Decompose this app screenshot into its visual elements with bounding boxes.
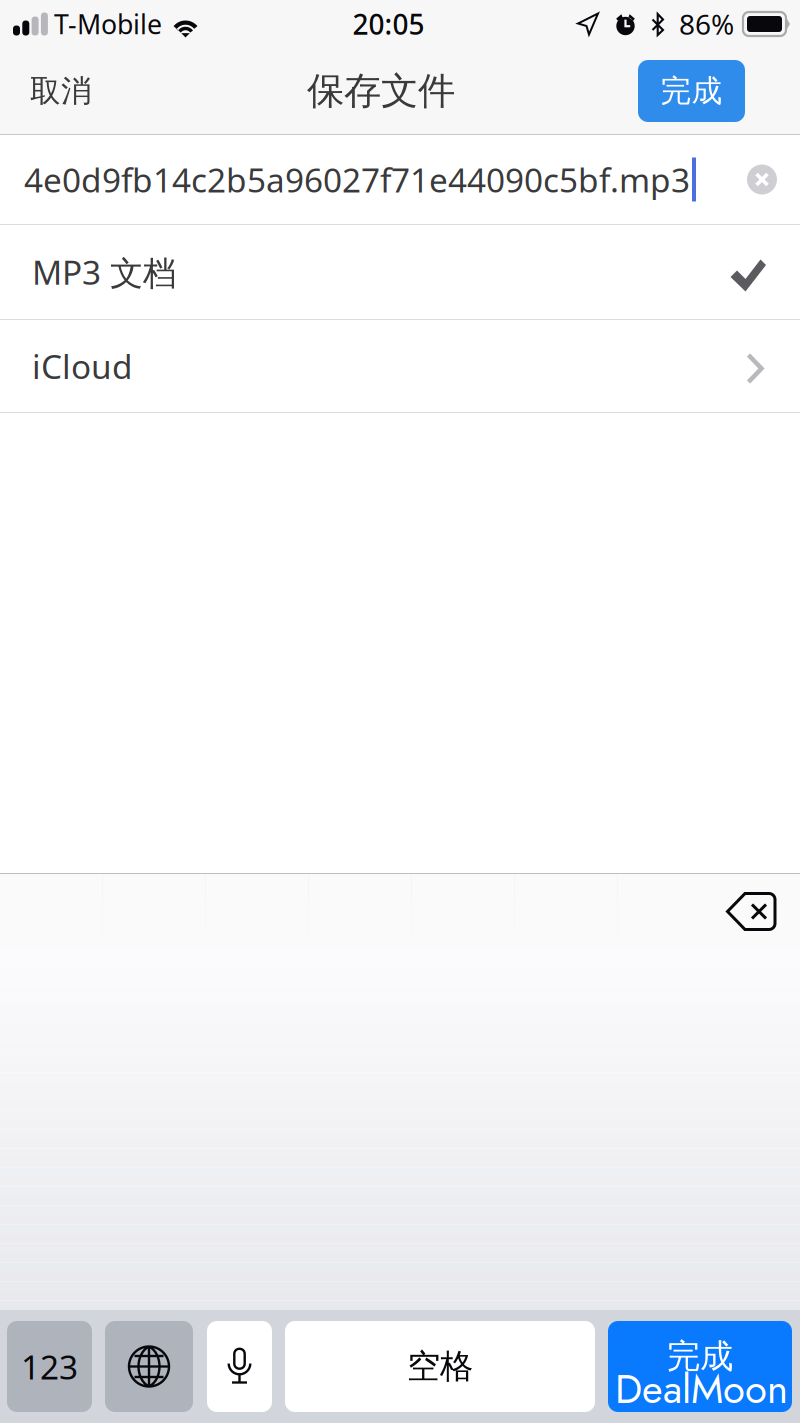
button[interactable]: iCloud — [0, 320, 800, 412]
button[interactable]: Clear text — [727, 135, 797, 224]
staticText: 保存文件 — [307, 68, 455, 114]
staticText: DealMoon — [615, 1360, 788, 1418]
staticText: 空格 — [407, 1346, 473, 1387]
button[interactable]: 123 — [7, 1321, 92, 1412]
button[interactable]: 取消 — [0, 48, 130, 134]
staticText: iCloud — [32, 344, 133, 388]
button[interactable]: MP3 文档 — [0, 225, 800, 319]
staticText: T-Mobile — [54, 6, 162, 42]
staticText: MP3 文档 — [32, 250, 176, 294]
button[interactable]: 完成 — [608, 1321, 792, 1412]
staticText: 20:05 — [352, 5, 424, 43]
button[interactable]: Switch keyboard — [105, 1321, 193, 1412]
button[interactable]: 完成 — [638, 60, 745, 122]
staticText: 完成 — [660, 72, 722, 110]
button[interactable]: Dictation — [207, 1321, 272, 1412]
button[interactable]: Delete — [714, 874, 790, 949]
staticText: 完成 — [667, 1336, 733, 1377]
staticText: 取消 — [30, 72, 92, 110]
button[interactable]: 空格 — [285, 1321, 595, 1412]
staticText: 86% — [679, 5, 734, 43]
staticText: 123 — [21, 1344, 78, 1389]
staticText: 4e0d9fb14c2b5a96027f71e44090c5bf.mp3 — [24, 157, 690, 202]
